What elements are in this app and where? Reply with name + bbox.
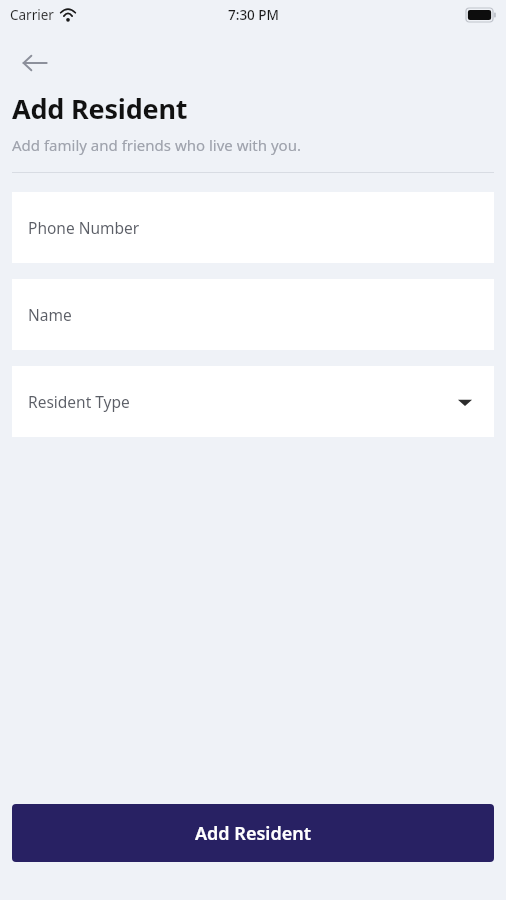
staticText: Add Resident bbox=[12, 90, 188, 127]
staticText: Phone Number bbox=[28, 217, 140, 238]
staticText: Resident Type bbox=[28, 391, 130, 412]
button[interactable]: Name bbox=[12, 279, 494, 350]
staticText: Name bbox=[28, 304, 72, 325]
button[interactable]: Back bbox=[14, 42, 56, 84]
staticText: Add family and friends who live with you… bbox=[12, 135, 301, 155]
button[interactable]: Phone Number bbox=[12, 192, 494, 263]
staticText: 7:30 PM bbox=[228, 6, 279, 24]
button[interactable]: Add Resident bbox=[12, 804, 494, 862]
staticText: Add Resident bbox=[195, 821, 311, 846]
button[interactable]: Resident Type bbox=[12, 366, 494, 437]
staticText: Carrier bbox=[10, 6, 54, 24]
